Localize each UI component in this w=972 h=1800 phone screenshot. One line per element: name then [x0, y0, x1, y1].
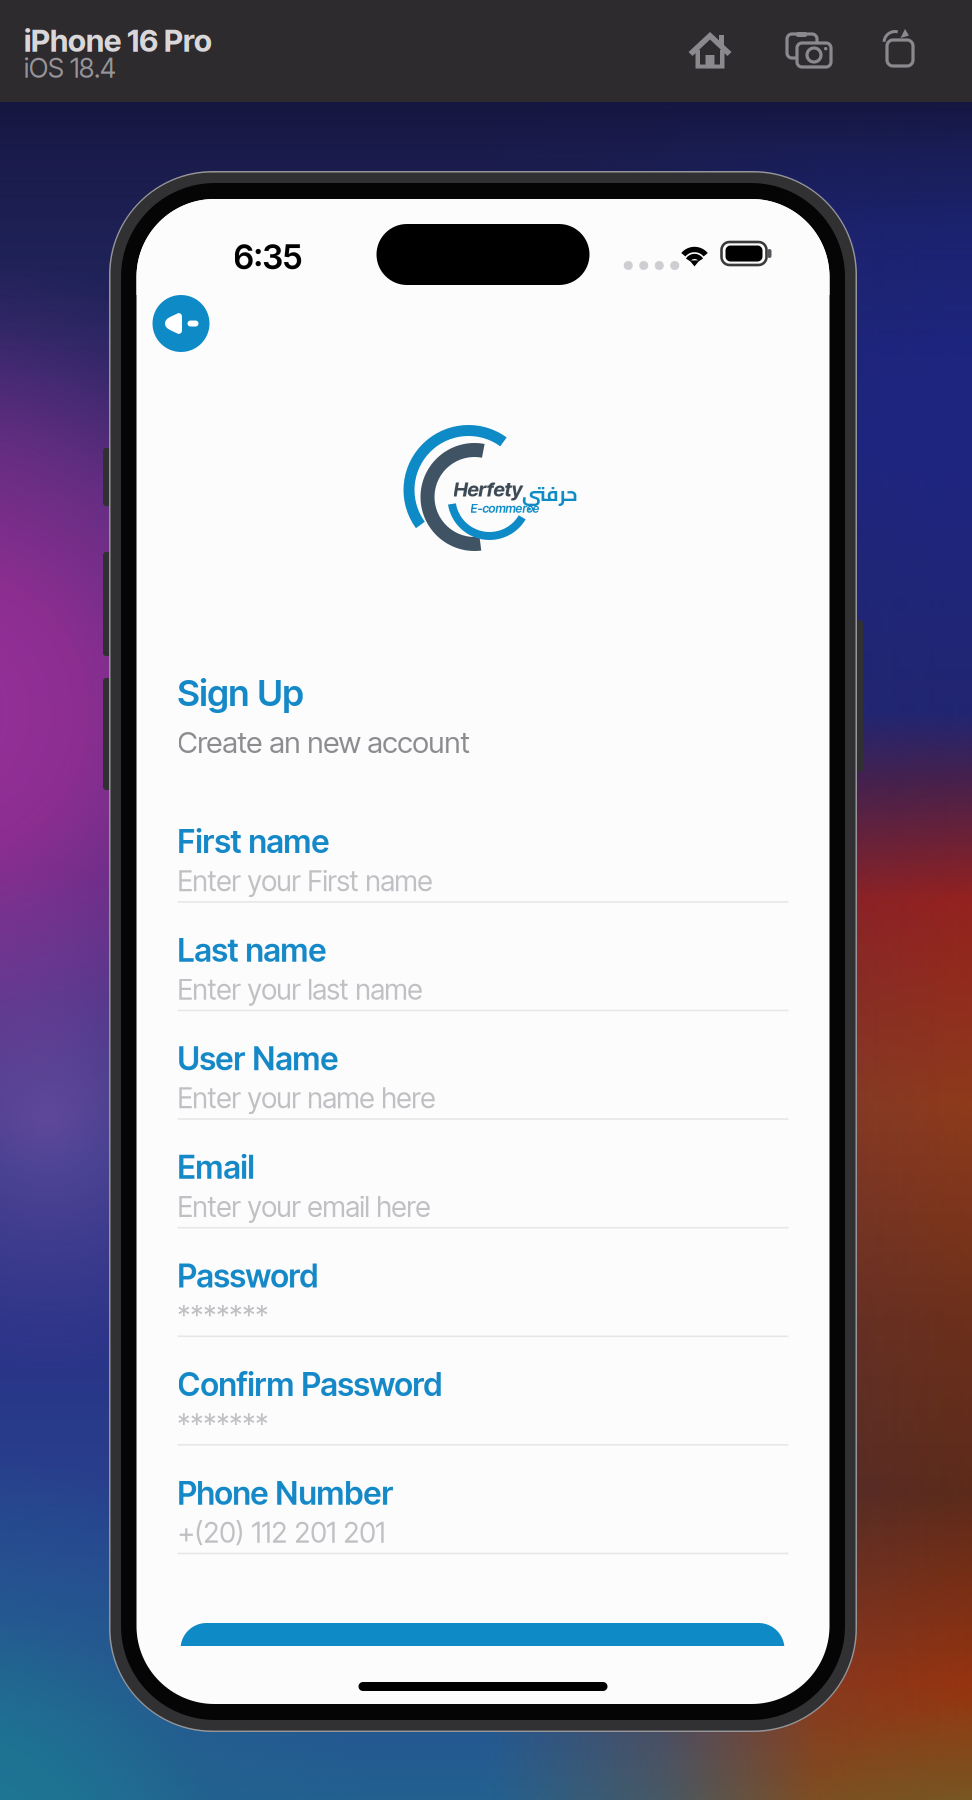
staticText: Create an new account	[177, 725, 469, 760]
staticText: Phone Number	[177, 1474, 393, 1512]
staticText: Enter your First name	[177, 864, 432, 898]
staticText: Email	[177, 1148, 254, 1186]
staticText: Enter your email here	[177, 1190, 430, 1224]
button[interactable]: Rotate device	[880, 29, 916, 66]
staticText: First name	[177, 822, 329, 861]
staticText: Confirm Password	[177, 1365, 442, 1404]
staticText: حرفتي	[521, 475, 577, 512]
staticText: iOS 18.4	[24, 52, 116, 84]
staticText: Sign Up	[177, 671, 303, 715]
staticText: Enter your last name	[177, 973, 422, 1006]
staticText: Password	[177, 1256, 318, 1295]
button[interactable]: Take screenshot	[787, 31, 832, 68]
button[interactable]: Home	[688, 31, 732, 69]
staticText: User Name	[177, 1039, 338, 1078]
button[interactable]: Sign Up	[180, 1623, 784, 1646]
staticText: iPhone 16 Pro	[24, 22, 212, 59]
staticText: +(20) 112 201 201	[177, 1516, 385, 1549]
staticText: Last name	[177, 931, 326, 969]
staticText: *******	[177, 1407, 268, 1441]
staticText: 6:35	[233, 237, 302, 277]
button[interactable]: Back	[152, 295, 209, 352]
staticText: E-commerce	[470, 501, 539, 515]
staticText: Herfety	[453, 477, 522, 501]
staticText: *******	[177, 1298, 268, 1332]
staticText: Enter your name here	[177, 1081, 435, 1115]
